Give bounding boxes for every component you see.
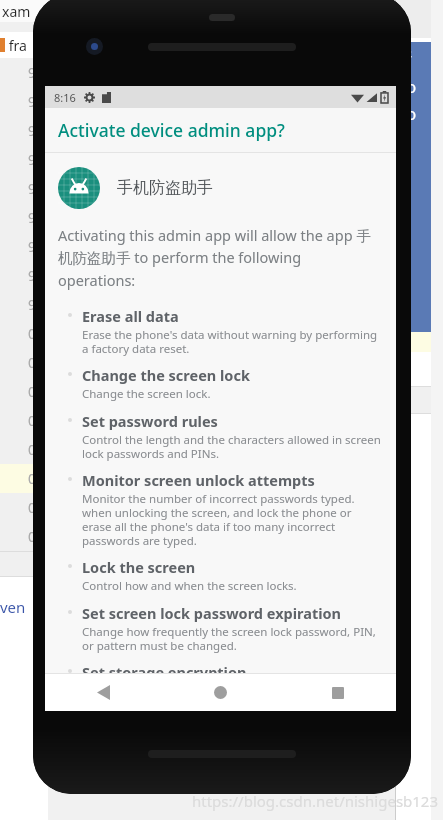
staticText: 01 <box>28 353 45 372</box>
staticText: 91 <box>28 63 45 82</box>
staticText: 99 <box>28 295 45 314</box>
staticText: Control the length and the characters al… <box>82 432 382 461</box>
staticText: Monitor screen unlock attempts <box>82 470 315 490</box>
staticText: 8:16 <box>54 90 76 105</box>
staticText: Change the screen lock. <box>82 386 211 402</box>
button[interactable]: Set screen lock password expiration <box>45 594 396 653</box>
staticText: 97 <box>28 237 45 256</box>
staticText: 04 <box>28 440 45 459</box>
staticText: Erase all data <box>82 306 179 326</box>
staticText: 手机防盗助手 <box>117 178 213 198</box>
staticText: 02 <box>28 382 45 401</box>
staticText: Lo <box>397 75 417 98</box>
button[interactable]: Back <box>45 674 162 711</box>
staticText: https://blog.csdn.net/nishigesb123 <box>192 791 439 811</box>
button[interactable]: Recent apps <box>279 674 396 711</box>
staticText: 95 <box>28 179 45 198</box>
staticText: 05 <box>28 469 45 488</box>
staticText: Lock the screen <box>82 557 196 577</box>
staticText: 94 <box>28 150 45 169</box>
staticText: Set password rules <box>82 411 218 431</box>
button[interactable]: Monitor screen unlock attempts <box>45 461 396 548</box>
staticText: 00 <box>28 324 45 343</box>
staticText: 资 <box>397 48 412 67</box>
button[interactable]: Change the screen lock <box>45 356 396 402</box>
staticText: Change how frequently the screen lock pa… <box>82 624 382 653</box>
staticText: fra <box>5 36 27 55</box>
staticText: 06 <box>28 498 45 517</box>
staticText: 98 <box>28 266 45 285</box>
staticText: 07 <box>28 527 45 546</box>
staticText: Set screen lock password expiration <box>82 603 342 623</box>
staticText: r.j <box>395 16 408 38</box>
staticText: Lo <box>397 102 417 125</box>
staticText: 93 <box>28 121 45 140</box>
staticText: Erase the phone's data without warning b… <box>82 327 382 356</box>
button[interactable]: Set password rules <box>45 402 396 461</box>
staticText: 92 <box>28 92 45 111</box>
staticText: Set storage encryption <box>82 662 247 673</box>
staticText: ven <box>0 597 26 617</box>
staticText: Activate device admin app? <box>58 118 285 142</box>
staticText: Activating this admin app will allow the… <box>58 225 378 291</box>
button[interactable]: Erase all data <box>45 297 396 356</box>
staticText: xam <box>2 2 31 21</box>
staticText: 96 <box>28 208 45 227</box>
staticText: Change the screen lock <box>82 365 250 385</box>
staticText: ac <box>395 187 411 207</box>
button[interactable]: Home <box>162 674 279 711</box>
button[interactable]: Lock the screen <box>45 548 396 594</box>
staticText: Monitor the number of incorrect password… <box>82 491 382 548</box>
staticText: 03 <box>28 411 45 430</box>
button[interactable]: Set storage encryption <box>45 653 396 673</box>
staticText: Control how and when the screen locks. <box>82 578 297 594</box>
